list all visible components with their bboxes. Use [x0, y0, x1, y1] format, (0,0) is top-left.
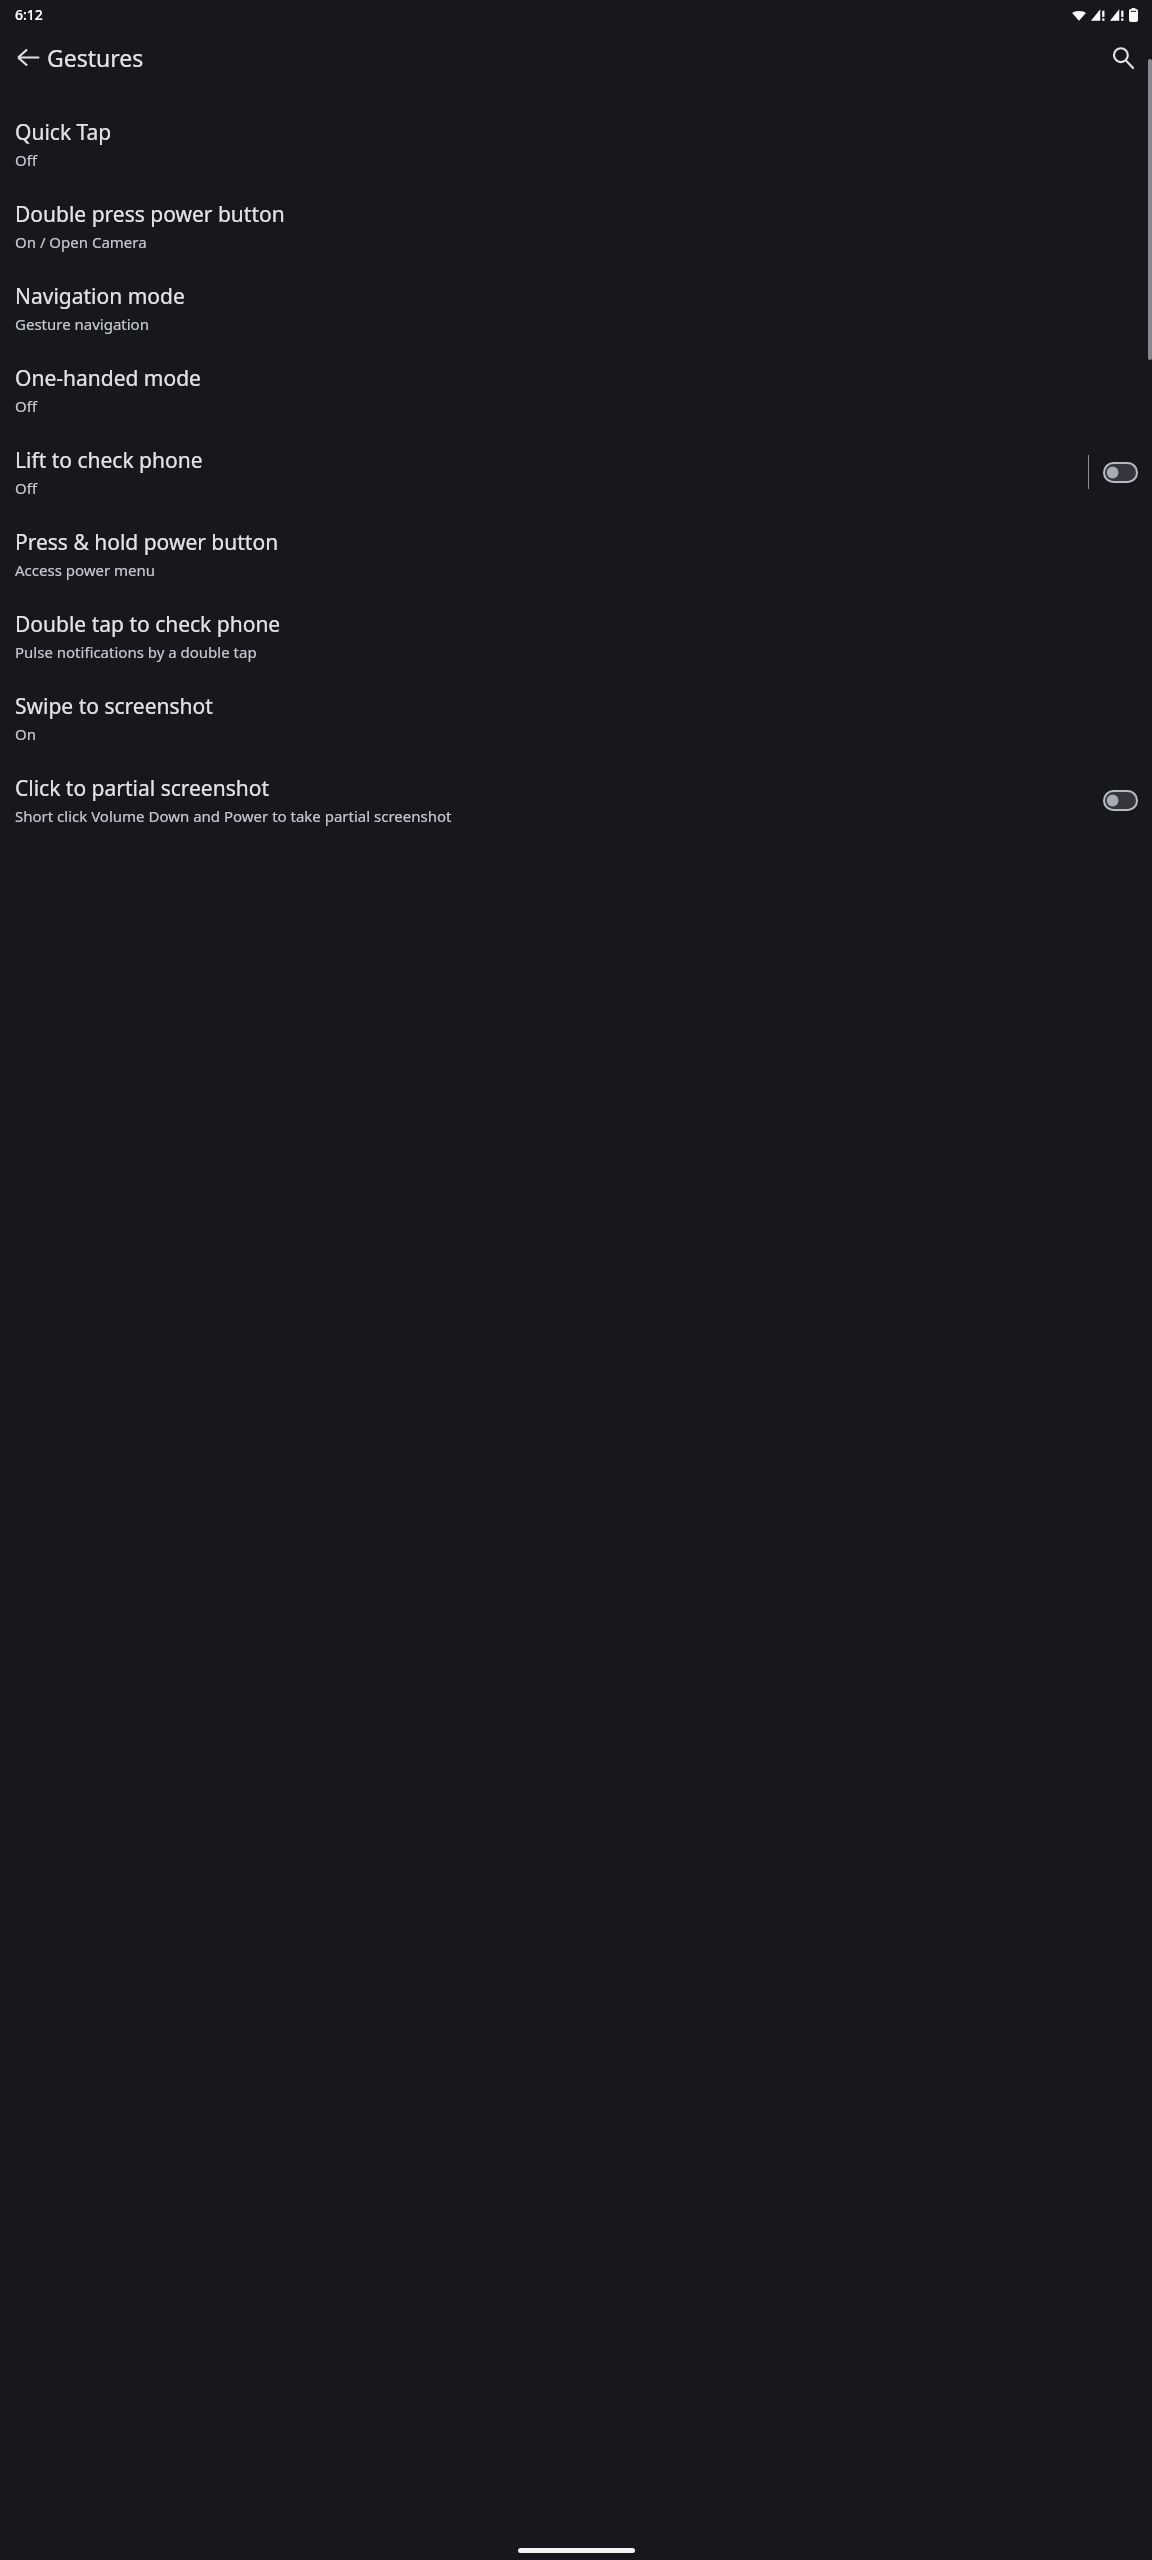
- staticText: Gestures: [47, 42, 144, 73]
- staticText: One-handed mode: [15, 364, 201, 393]
- staticText: Pulse notifications by a double tap: [15, 642, 257, 662]
- staticText: On / Open Camera: [15, 232, 147, 252]
- staticText: Press & hold power button: [15, 528, 279, 557]
- staticText: Access power menu: [15, 560, 156, 580]
- staticText: 6:12: [15, 5, 43, 24]
- button[interactable]: Lift to check phone: [0, 431, 1152, 513]
- button[interactable]: Toggle Lift to check phone: [1103, 462, 1138, 483]
- staticText: Off: [15, 150, 38, 170]
- button[interactable]: Click to partial screenshot: [0, 759, 1152, 841]
- staticText: Lift to check phone: [15, 446, 203, 475]
- button[interactable]: Double tap to check phone: [0, 595, 1152, 677]
- button[interactable]: Quick Tap: [0, 103, 1152, 185]
- staticText: Navigation mode: [15, 282, 185, 311]
- staticText: Swipe to screenshot: [15, 692, 213, 721]
- button[interactable]: Search: [1099, 34, 1145, 80]
- button[interactable]: Navigation mode: [0, 267, 1152, 349]
- staticText: Double tap to check phone: [15, 610, 281, 639]
- staticText: Quick Tap: [15, 118, 112, 147]
- staticText: On: [15, 724, 36, 744]
- staticText: Off: [15, 478, 38, 498]
- staticText: Off: [15, 396, 38, 416]
- button[interactable]: Toggle Click to partial screenshot: [1103, 790, 1138, 811]
- staticText: Click to partial screenshot: [15, 774, 270, 803]
- staticText: Gesture navigation: [15, 314, 149, 334]
- button[interactable]: One-handed mode: [0, 349, 1152, 431]
- staticText: Short click Volume Down and Power to tak…: [15, 806, 452, 826]
- staticText: Double press power button: [15, 200, 285, 229]
- button[interactable]: Back: [5, 34, 51, 80]
- button[interactable]: Press & hold power button: [0, 513, 1152, 595]
- button[interactable]: Swipe to screenshot: [0, 677, 1152, 759]
- button[interactable]: Double press power button: [0, 185, 1152, 267]
